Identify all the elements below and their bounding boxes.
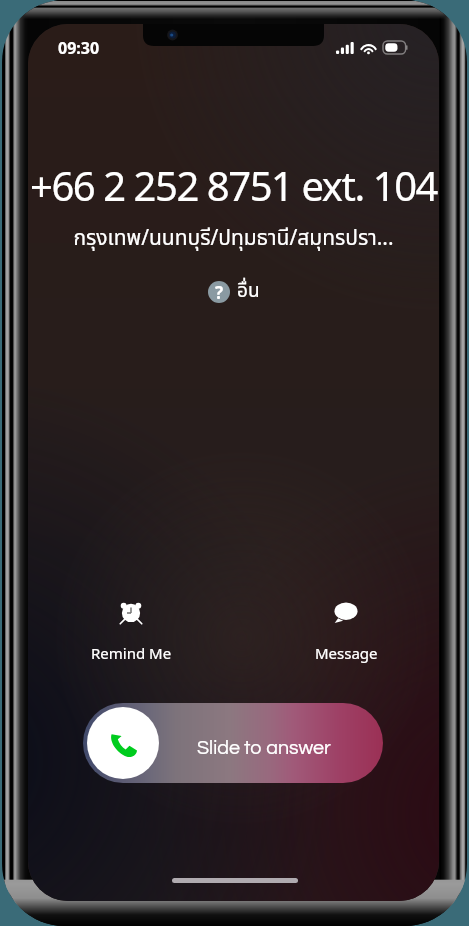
button[interactable]: Answer call [87,707,159,779]
staticText: อื่น [237,277,260,306]
staticText: กรุงเทพ/นนทบุรี/ปทุมธานี/สมุทรปรา... [28,223,439,255]
other: Message [334,600,358,624]
button[interactable]: Slide to answer [83,703,383,783]
staticText: Slide to answer [197,738,331,758]
staticText: 09:30 [58,37,100,59]
staticText: Message [315,643,378,663]
staticText: ? [215,281,224,303]
other: Remind Me [120,601,142,623]
button[interactable]: ? [208,277,260,306]
button[interactable]: Remind Me [76,598,186,665]
staticText: Remind Me [91,643,172,663]
button[interactable]: Message [291,598,401,665]
staticText: +66 2 252 8751 ext. 104 [28,158,439,212]
